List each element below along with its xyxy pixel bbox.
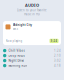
staticText: 2:10 <box>54 54 61 57</box>
staticText: Night Drive <box>8 59 24 62</box>
staticText: Listen to your favorite <box>17 8 47 12</box>
staticText: Midnight City <box>12 23 31 27</box>
staticText: 3:24 <box>50 39 57 43</box>
staticText: Now playing <box>5 39 22 43</box>
staticText: Deep Focus <box>8 54 24 57</box>
staticText: 4:18 <box>54 64 61 67</box>
staticText: 3:02 <box>54 59 61 62</box>
staticText: 1:24 <box>54 49 61 52</box>
staticText: AUDIO <box>25 2 39 8</box>
staticText: M83 <box>12 27 18 31</box>
staticText: music in HD <box>24 13 40 16</box>
staticText: Morning Run <box>8 64 27 67</box>
staticText: Chill Vibes <box>8 49 24 52</box>
